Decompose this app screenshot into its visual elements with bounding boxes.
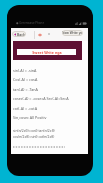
button[interactable]: Back — [12, 31, 26, 37]
button[interactable]: Menu — [47, 32, 51, 36]
staticText: Now Write yo — [62, 31, 83, 35]
staticText: Sin,cosec All Positiv — [13, 115, 47, 120]
staticText: ● Greenwave Phone — [16, 21, 45, 25]
button[interactable]: Now Write yo — [62, 30, 83, 36]
staticText: cosec(-A) = -cosecA Sec(-A)=SecA — [13, 96, 69, 101]
staticText: cos(π/2±θ)=sinθ cot(π/2±θ) — [13, 134, 55, 138]
staticText: sin(-A) = -sinA — [13, 68, 37, 73]
staticText: cot(-A) = -cotA — [13, 106, 37, 111]
staticText: Back — [17, 32, 25, 37]
staticText: sin(π/2±θ)=cosθ tan(π/2±θ) — [13, 128, 55, 132]
staticText: Cos(-A) = cosA — [13, 77, 38, 82]
staticText: tan(-A) = -TanA — [13, 87, 38, 92]
staticText: Sweet Write nga — [32, 50, 62, 55]
button[interactable]: Sweet Write nga — [17, 49, 76, 55]
button[interactable]: App icon — [37, 31, 43, 38]
